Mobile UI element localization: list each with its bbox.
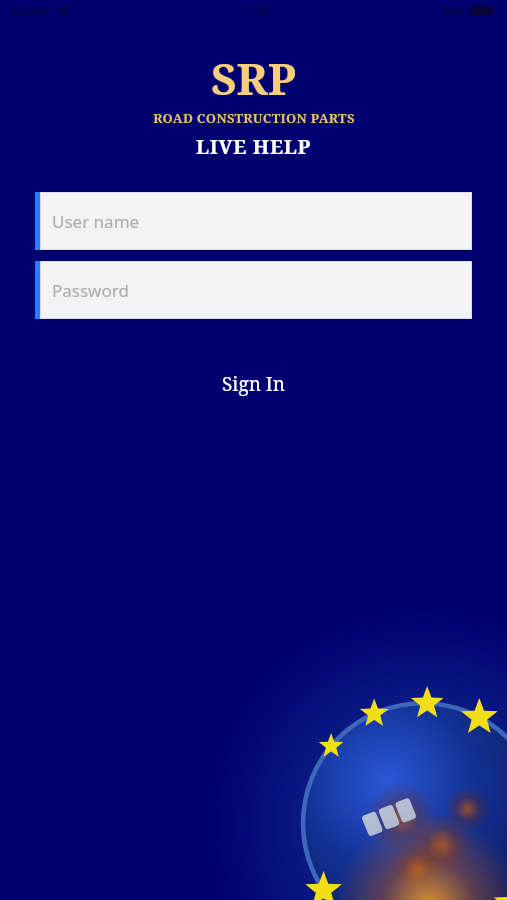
staticText: Password xyxy=(52,279,129,302)
button[interactable]: Password xyxy=(35,261,472,319)
staticText: 11:55 xyxy=(242,3,271,18)
button[interactable]: Sign In xyxy=(198,365,310,403)
staticText: ROAD CONSTRUCTION PARTS xyxy=(153,109,355,127)
button[interactable]: User name xyxy=(35,192,472,250)
staticText: LIVE HELP xyxy=(196,133,311,160)
other: Battery 94 percent xyxy=(470,5,495,16)
staticText: SRP xyxy=(211,48,296,108)
other: Wi-Fi xyxy=(58,5,71,15)
staticText: Carrier xyxy=(12,3,51,18)
staticText: Sign In xyxy=(222,371,286,397)
staticText: User name xyxy=(52,210,140,233)
staticText: %94 xyxy=(442,3,465,18)
